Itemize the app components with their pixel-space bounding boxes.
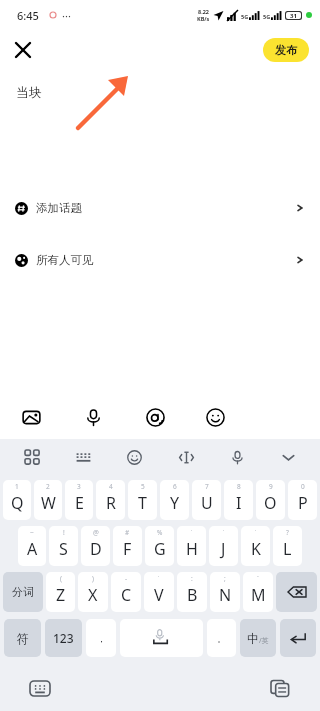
button[interactable]: 2 <box>34 480 62 520</box>
button[interactable]: Cursor <box>172 443 200 471</box>
staticText: 添加话题 <box>36 201 82 215</box>
button[interactable]: Voice <box>223 443 251 471</box>
button[interactable]: 9 <box>256 480 285 520</box>
button[interactable]: Clipboard <box>266 674 294 702</box>
staticText: 123 <box>53 630 74 646</box>
button[interactable]: Keyboard <box>69 443 97 471</box>
button[interactable]: 。 <box>207 619 236 657</box>
button[interactable]: Emoji <box>120 443 148 471</box>
button[interactable]: 5 <box>128 480 157 520</box>
button[interactable]: Close <box>8 35 38 65</box>
staticText: N <box>219 584 232 606</box>
button[interactable]: 7 <box>192 480 221 520</box>
staticText: ! <box>63 528 65 537</box>
staticText: 分词 <box>12 585 34 599</box>
staticText: 5 <box>141 482 145 491</box>
staticText: G <box>154 538 166 560</box>
staticText: ˙ <box>223 528 225 537</box>
button[interactable]: 123 <box>45 619 82 657</box>
button[interactable]: ˙ <box>177 526 206 566</box>
staticText: I <box>236 492 242 514</box>
staticText: # <box>125 528 130 537</box>
button[interactable]: Space <box>120 619 203 657</box>
staticText: @ <box>93 528 99 537</box>
staticText: 6:45 <box>17 8 39 23</box>
button[interactable]: ˙ <box>241 526 270 566</box>
button[interactable]: 3 <box>65 480 93 520</box>
button[interactable]: ˙ <box>209 526 238 566</box>
staticText: : <box>191 574 193 583</box>
staticText: 0 <box>301 482 305 491</box>
staticText: ~ <box>30 528 34 537</box>
staticText: Y <box>170 492 180 514</box>
staticText: 。 <box>217 633 226 644</box>
staticText: W <box>41 492 56 514</box>
staticText: ˙ <box>158 574 160 583</box>
button[interactable]: 所有人可见 <box>0 247 320 273</box>
staticText: 7 <box>205 482 209 491</box>
button[interactable]: 0 <box>288 480 317 520</box>
staticText: R <box>106 492 116 514</box>
button[interactable]: ~ <box>18 526 46 566</box>
button[interactable]: ! <box>49 526 78 566</box>
staticText: A <box>27 538 38 560</box>
button[interactable]: % <box>145 526 174 566</box>
staticText: 1 <box>15 482 19 491</box>
button[interactable]: @ <box>81 526 110 566</box>
button[interactable]: ， <box>86 619 116 657</box>
staticText: X <box>88 584 98 606</box>
button[interactable]: ( <box>46 572 75 612</box>
button[interactable]: 6 <box>160 480 189 520</box>
button[interactable]: ; <box>210 572 240 612</box>
button[interactable]: - <box>111 572 141 612</box>
staticText: 6 <box>173 482 177 491</box>
button[interactable]: ` <box>243 572 273 612</box>
staticText: V <box>154 584 164 606</box>
button[interactable]: 分词 <box>3 572 43 612</box>
button[interactable]: 1 <box>3 480 31 520</box>
button[interactable]: 添加话题 <box>0 195 320 221</box>
staticText: 4 <box>109 482 113 491</box>
staticText: Z <box>56 584 66 606</box>
staticText: ) <box>92 574 94 583</box>
staticText: Q <box>11 492 24 514</box>
button[interactable]: Emoji <box>202 404 228 430</box>
staticText: ˙ <box>255 528 257 537</box>
button[interactable]: 8 <box>224 480 253 520</box>
staticText: S <box>59 538 68 560</box>
button[interactable]: ) <box>78 572 108 612</box>
staticText: ， <box>97 633 106 644</box>
button[interactable]: Image <box>18 404 44 430</box>
staticText: H <box>186 538 198 560</box>
button[interactable]: Keyboard <box>26 674 54 702</box>
staticText: KB/s <box>197 15 210 22</box>
button[interactable]: ˙ <box>144 572 174 612</box>
button[interactable]: Backspace <box>276 572 317 612</box>
button[interactable]: 发布 <box>263 38 309 62</box>
button[interactable]: Enter <box>280 619 316 657</box>
staticText: 9 <box>269 482 273 491</box>
staticText: 8.22 <box>198 8 209 15</box>
button[interactable]: Apps <box>18 443 46 471</box>
staticText: T <box>138 492 147 514</box>
button[interactable]: Voice <box>80 404 106 430</box>
staticText: 8 <box>237 482 241 491</box>
staticText: M <box>251 584 266 606</box>
staticText: ` <box>257 574 259 583</box>
button[interactable]: Mention <box>142 404 168 430</box>
button[interactable]: : <box>177 572 207 612</box>
button[interactable]: 符 <box>4 619 41 657</box>
staticText: 发布 <box>275 43 297 57</box>
staticText: 5G <box>241 13 249 20</box>
staticText: 2 <box>46 482 50 491</box>
staticText: U <box>201 492 213 514</box>
staticText: K <box>251 538 261 560</box>
staticText: 所有人可见 <box>36 253 94 267</box>
button[interactable]: Hide keyboard <box>274 443 302 471</box>
button[interactable]: ? <box>273 526 302 566</box>
staticText: 31 <box>290 12 297 19</box>
staticText: O <box>264 492 277 514</box>
button[interactable]: 4 <box>96 480 125 520</box>
button[interactable]: # <box>113 526 142 566</box>
button[interactable]: 中 <box>240 619 276 657</box>
